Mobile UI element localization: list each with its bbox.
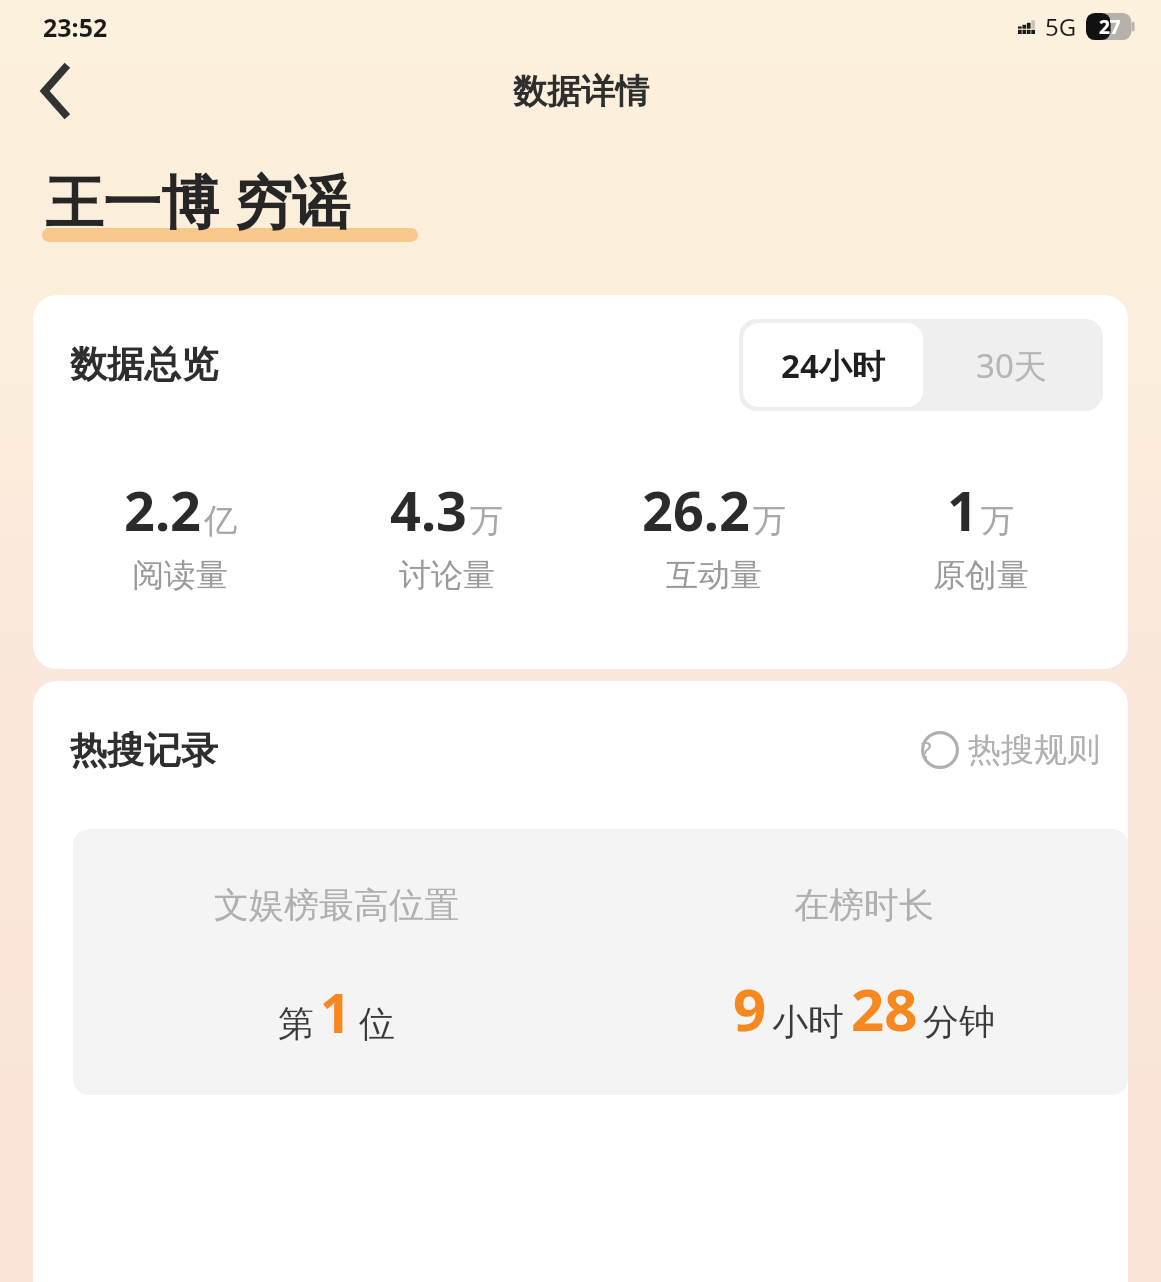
staticText: 王一博 穷谣 <box>45 161 351 240</box>
staticText: 第 <box>278 1001 314 1046</box>
staticText: ? <box>921 733 932 766</box>
button[interactable]: 文娱榜最高位置 <box>73 829 600 1049</box>
staticText: 位 <box>359 1001 395 1046</box>
staticText: 万 <box>470 500 503 542</box>
button[interactable]: 2.2 <box>47 473 313 595</box>
staticText: 讨论量 <box>399 555 495 595</box>
staticText: 1 <box>947 473 978 547</box>
staticText: 5G <box>1045 10 1077 43</box>
staticText: 阅读量 <box>132 555 228 595</box>
staticText: 互动量 <box>666 555 762 595</box>
staticText: 文娱榜最高位置 <box>214 883 459 927</box>
staticText: 数据总览 <box>70 341 218 388</box>
staticText: 23:52 <box>43 10 108 44</box>
button[interactable]: 返回 <box>12 49 98 133</box>
staticText: 24小时 <box>781 343 885 388</box>
button[interactable]: 26.2 <box>580 473 847 595</box>
staticText: 热搜规则 <box>968 729 1100 771</box>
staticText: 万 <box>753 500 786 542</box>
button[interactable]: 4.3 <box>313 473 580 595</box>
button[interactable]: 30天 <box>919 319 1103 411</box>
staticText: 原创量 <box>933 555 1029 595</box>
staticText: 数据详情 <box>513 70 649 113</box>
button[interactable]: 在榜时长 <box>600 829 1128 1048</box>
staticText: 小时 <box>772 999 844 1044</box>
staticText: 在榜时长 <box>794 883 934 927</box>
staticText: 27 <box>1099 14 1121 40</box>
staticText: 亿 <box>204 500 237 542</box>
staticText: 分钟 <box>923 999 995 1044</box>
staticText: 9 <box>733 969 767 1048</box>
button[interactable]: 24小时 <box>743 323 923 407</box>
staticText: 30天 <box>976 343 1047 388</box>
button[interactable]: 1 <box>847 473 1114 595</box>
staticText: 28 <box>851 969 918 1048</box>
staticText: 4.3 <box>390 473 467 547</box>
staticText: 万 <box>981 500 1014 542</box>
staticText: 热搜记录 <box>70 727 218 774</box>
button[interactable]: 热搜规则 <box>921 729 1100 771</box>
staticText: 1 <box>320 975 351 1049</box>
staticText: 2.2 <box>124 473 201 547</box>
staticText: 26.2 <box>642 473 750 547</box>
